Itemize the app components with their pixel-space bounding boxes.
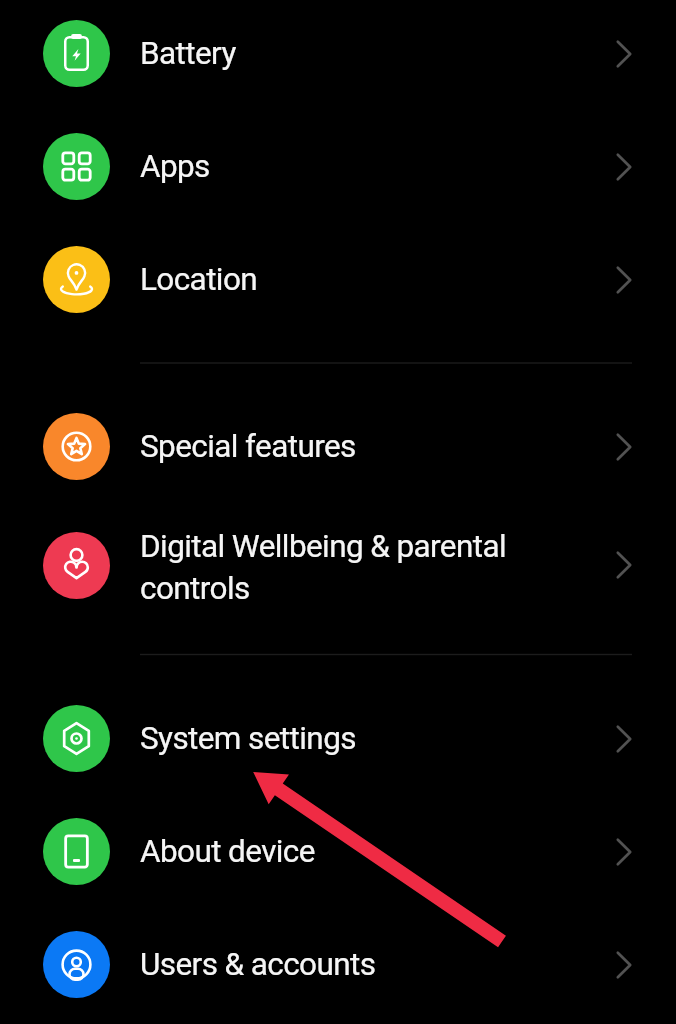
button[interactable]: Location bbox=[0, 223, 676, 336]
staticText: Battery bbox=[140, 35, 570, 72]
button[interactable]: Battery bbox=[0, 0, 676, 110]
button[interactable]: Digital Wellbeing & parental controls bbox=[0, 503, 676, 627]
staticText: About device bbox=[140, 833, 570, 870]
button[interactable]: Apps bbox=[0, 110, 676, 223]
staticText: Users & accounts bbox=[140, 946, 570, 983]
staticText: System settings bbox=[140, 720, 570, 757]
button[interactable]: Special features bbox=[0, 390, 676, 503]
button[interactable]: System settings bbox=[0, 682, 676, 795]
button[interactable]: Users & accounts bbox=[0, 908, 676, 1021]
staticText: Digital Wellbeing & parental controls bbox=[140, 528, 570, 606]
staticText: Apps bbox=[140, 148, 570, 185]
staticText: Special features bbox=[140, 428, 570, 465]
staticText: Location bbox=[140, 261, 570, 298]
button[interactable]: About device bbox=[0, 795, 676, 908]
